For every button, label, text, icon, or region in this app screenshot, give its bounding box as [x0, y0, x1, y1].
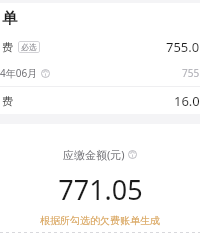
staticText: 根据所勾选的欠费账单生成: [40, 214, 160, 227]
staticText: 755.0: [166, 38, 200, 56]
button[interactable]: 4年06月: [0, 60, 200, 86]
staticText: 费: [2, 40, 13, 54]
other: 说明: [41, 69, 50, 78]
staticText: 应缴金额(元): [63, 147, 125, 162]
other: 金额说明: [128, 150, 137, 159]
staticText: 771.05: [58, 171, 143, 208]
staticText: 费: [2, 94, 13, 108]
staticText: 必选: [21, 42, 37, 52]
button[interactable]: 应缴金额(元): [63, 147, 137, 162]
button[interactable]: 费: [0, 33, 200, 60]
staticText: 755: [182, 66, 200, 80]
staticText: 16.0: [174, 92, 200, 110]
staticText: 4年06月: [0, 66, 38, 80]
button[interactable]: 费: [0, 87, 200, 114]
staticText: 单: [2, 9, 17, 28]
